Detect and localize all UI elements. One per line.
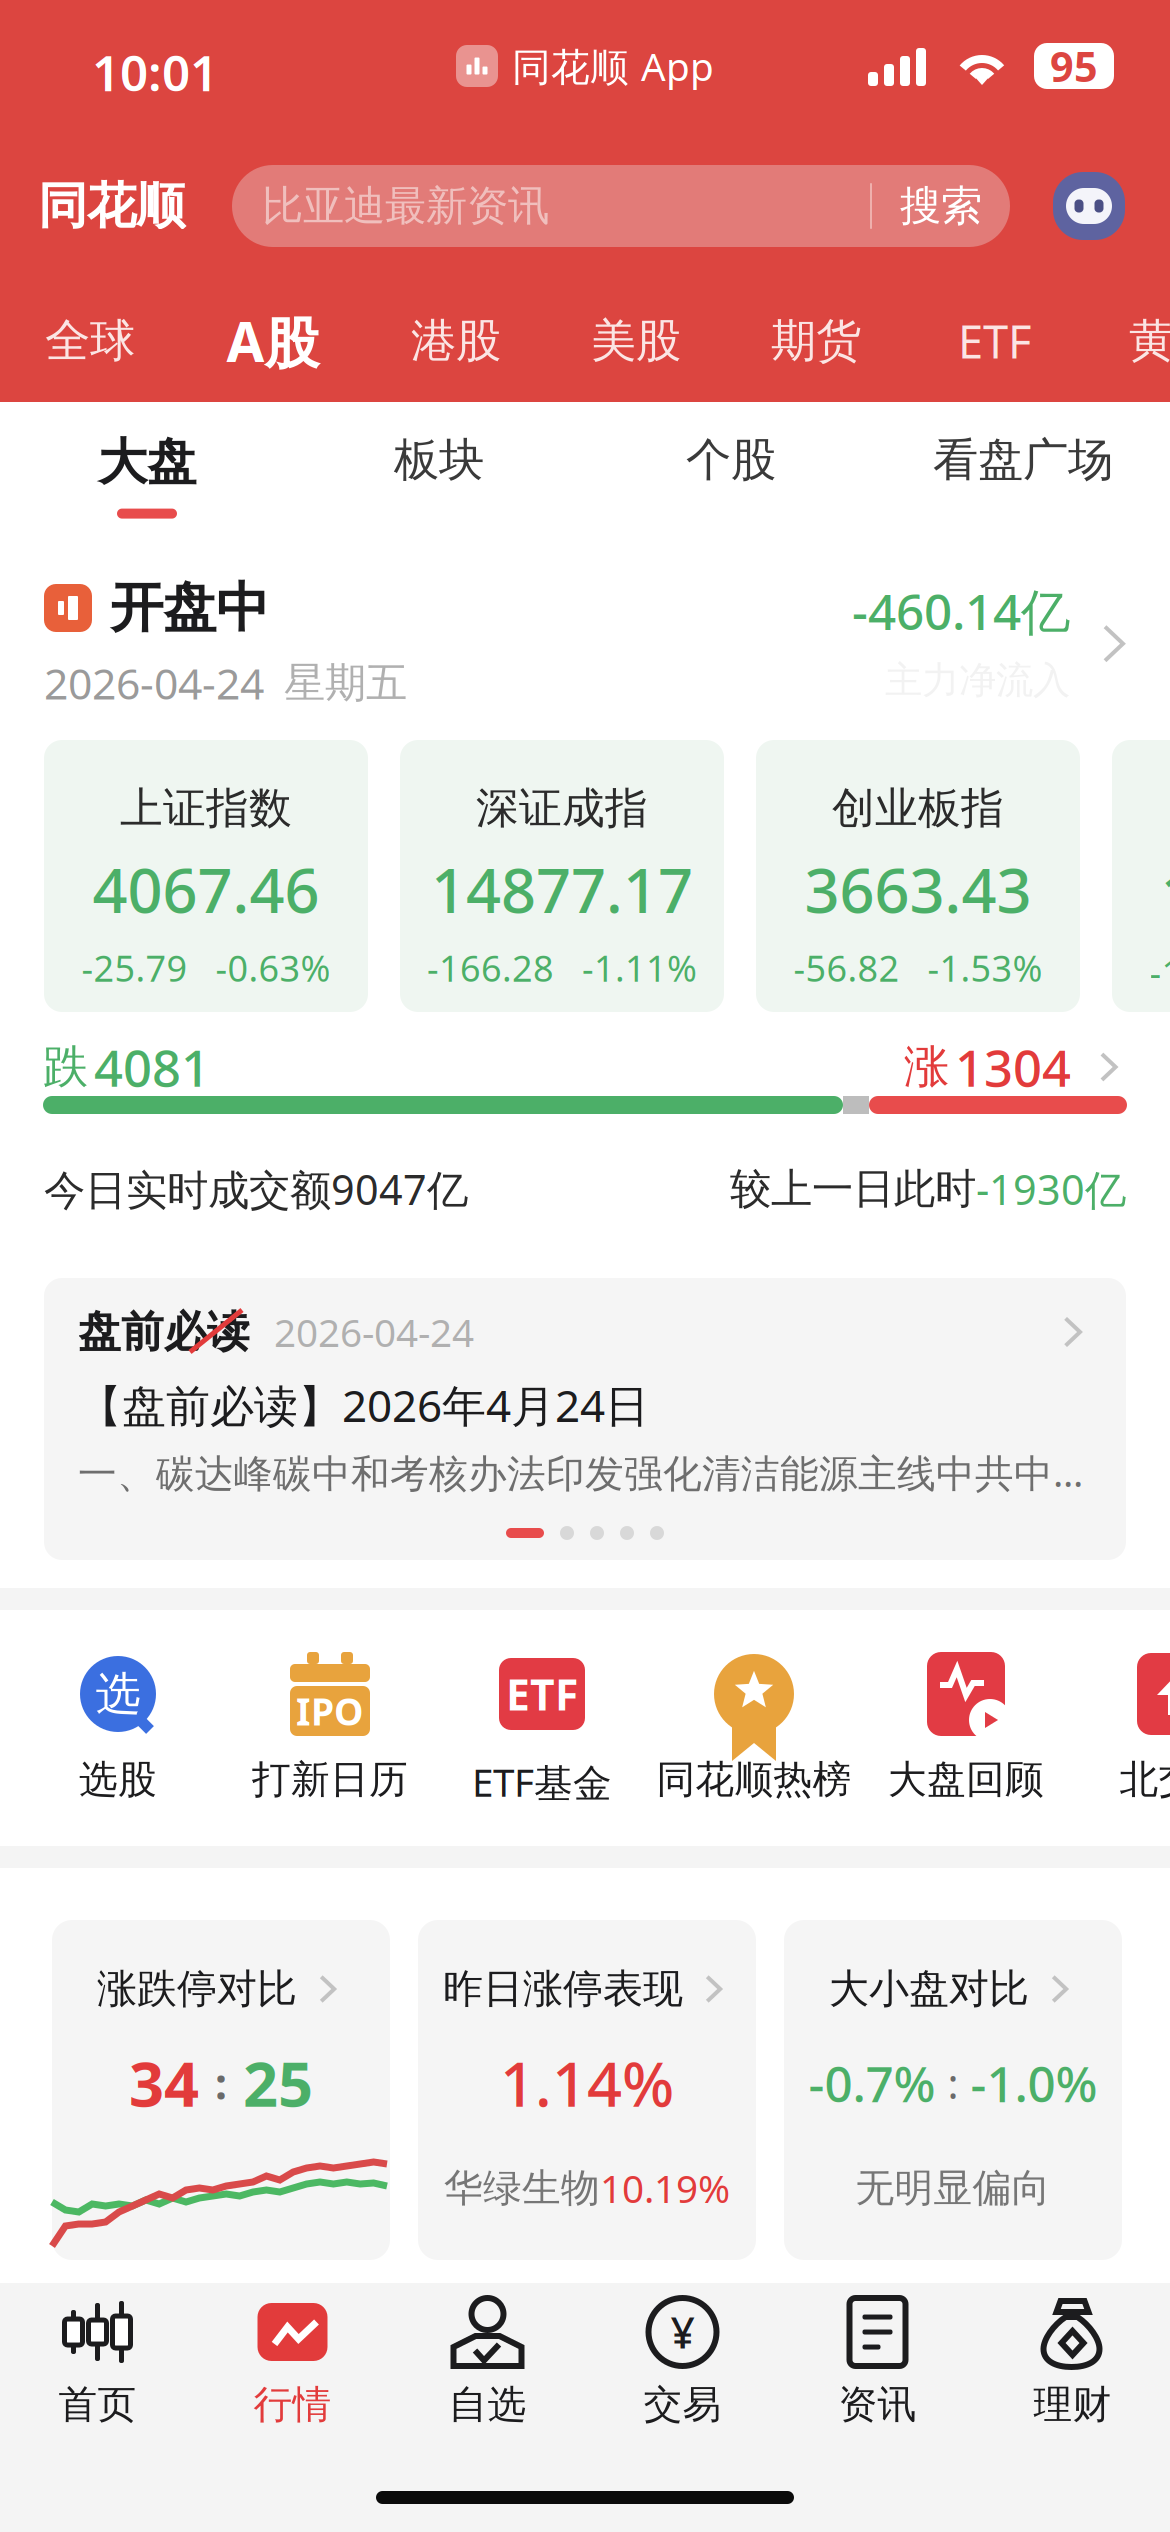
staticText: 1.14% — [500, 2042, 674, 2124]
button[interactable]: 黄金 — [1084, 279, 1170, 403]
button[interactable]: 理财 — [975, 2295, 1170, 2435]
button[interactable]: AI assistant — [1050, 167, 1128, 245]
button[interactable]: 科创50 — [1112, 740, 1170, 1012]
staticText: 无明显偏向 — [855, 2164, 1050, 2212]
staticText: 涨 — [904, 1039, 949, 1095]
button[interactable]: ¥ — [585, 2295, 780, 2435]
staticText: IPO — [296, 1686, 364, 1736]
staticText: 同花顺 — [38, 176, 185, 236]
staticText: 3663.43 — [804, 848, 1031, 930]
staticText: 美股 — [591, 313, 681, 369]
staticText: 大盘回顾 — [888, 1756, 1044, 1803]
button[interactable]: 涨跌停对比 — [52, 1920, 390, 2260]
staticText: 选 — [95, 1666, 140, 1722]
staticText: 首页 — [58, 2381, 136, 2428]
button[interactable]: 选 — [12, 1610, 224, 1846]
staticText: 一、碳达峰碳中和考核办法印发强化清洁能源主线中共中央办… — [78, 1446, 1092, 1498]
staticText: 2026-04-24 — [274, 1306, 474, 1358]
staticText: 1304 — [955, 1033, 1071, 1101]
staticText: 创业板指 — [832, 782, 1004, 834]
staticText: 资讯 — [838, 2381, 916, 2428]
staticText: 4081 — [94, 1033, 210, 1101]
staticText: 华绿生物 — [444, 2164, 600, 2212]
button[interactable]: ETF — [436, 1610, 648, 1846]
staticText: 北交所 — [1119, 1756, 1170, 1803]
button[interactable]: 个股 — [585, 402, 877, 528]
button[interactable]: 板块 — [293, 402, 585, 528]
staticText: A股 — [226, 305, 319, 377]
staticText: 港股 — [411, 313, 501, 369]
staticText: 板块 — [394, 432, 484, 488]
button[interactable]: IPO — [224, 1610, 436, 1846]
staticText: 盘前必读 — [78, 1306, 250, 1358]
staticText: 比亚迪最新资讯 — [262, 181, 549, 231]
staticText: -1.53% — [927, 944, 1042, 992]
staticText: 跌 — [43, 1039, 88, 1095]
staticText: ETF基金 — [472, 1756, 612, 1807]
button[interactable]: ETF — [906, 279, 1084, 403]
staticText: 全球 — [45, 313, 135, 369]
staticText: 【盘前必读】2026年4月24日 — [78, 1376, 649, 1434]
button[interactable]: 北交所 — [1072, 1610, 1170, 1846]
staticText: 星期五 — [284, 658, 407, 708]
staticText: 选股 — [79, 1756, 157, 1803]
button[interactable]: 深证成指 — [400, 740, 724, 1012]
staticText: 今日实时成交额9047亿 — [44, 1162, 468, 1216]
staticText: 同花顺热榜 — [656, 1756, 851, 1803]
staticText: ETF — [958, 311, 1032, 371]
staticText: -12.34 — [1149, 948, 1170, 996]
staticText: -1930亿 — [976, 1162, 1126, 1216]
button[interactable]: 港股 — [366, 279, 546, 403]
button[interactable]: 美股 — [546, 279, 726, 403]
button[interactable]: 行情 — [195, 2295, 390, 2435]
button[interactable]: 自选 — [390, 2295, 585, 2435]
staticText: 行情 — [253, 2381, 331, 2428]
button[interactable]: 首页 — [0, 2295, 195, 2435]
button[interactable]: 比亚迪最新资讯 — [232, 165, 1010, 247]
staticText: 昨日涨停表现 — [443, 1964, 683, 2013]
button[interactable]: 看盘广场 — [877, 402, 1169, 528]
button[interactable]: 昨日涨停表现 — [418, 1920, 756, 2260]
staticText: 大小盘对比 — [829, 1964, 1029, 2013]
staticText: 4067.46 — [92, 848, 319, 930]
staticText: 黄金 — [1129, 313, 1170, 369]
button[interactable]: A股 — [180, 279, 366, 403]
staticText: 14877.17 — [431, 848, 693, 930]
staticText: 95 — [1050, 39, 1098, 93]
button[interactable]: 资讯 — [780, 2295, 975, 2435]
staticText: 理财 — [1033, 2381, 1111, 2428]
staticText: 期货 — [771, 313, 861, 369]
staticText: -56.82 — [793, 944, 899, 992]
button[interactable]: 大小盘对比 — [784, 1920, 1122, 2260]
staticText: 打新日历 — [252, 1756, 408, 1803]
staticText: 个股 — [686, 432, 776, 488]
staticText: : — [947, 2056, 958, 2110]
staticText: -460.14亿 — [852, 578, 1070, 643]
button[interactable]: 创业板指 — [756, 740, 1080, 1012]
staticText: ¥ — [670, 2304, 694, 2360]
button[interactable]: 大盘 — [1, 402, 293, 528]
staticText: 主力净流入 — [885, 657, 1070, 703]
staticText: : — [215, 2055, 227, 2111]
staticText: -166.28 — [427, 944, 554, 992]
staticText: 深证成指 — [476, 782, 648, 834]
button[interactable]: 开盘中 — [44, 578, 407, 710]
button[interactable]: 同花顺热榜 — [648, 1610, 860, 1846]
button[interactable]: -460.14亿 — [852, 578, 1138, 703]
button[interactable]: 跌 — [0, 1012, 1170, 1114]
staticText: 34 — [129, 2042, 199, 2124]
staticText: ETF — [506, 1666, 578, 1722]
button[interactable]: 盘前必读 — [44, 1278, 1126, 1560]
staticText: 10.19% — [600, 2162, 730, 2214]
staticText: 上证指数 — [120, 782, 292, 834]
staticText: 搜索 — [900, 181, 982, 231]
button[interactable]: 大盘回顾 — [860, 1610, 1072, 1846]
staticText: -1.11% — [582, 944, 697, 992]
staticText: -1.0% — [970, 2050, 1097, 2116]
staticText: -0.7% — [808, 2050, 935, 2116]
button[interactable]: 期货 — [726, 279, 906, 403]
button[interactable]: 上证指数 — [44, 740, 368, 1012]
button[interactable]: 全球 — [0, 279, 180, 403]
staticText: 25 — [243, 2042, 313, 2124]
staticText: 2026-04-24 — [44, 655, 264, 711]
